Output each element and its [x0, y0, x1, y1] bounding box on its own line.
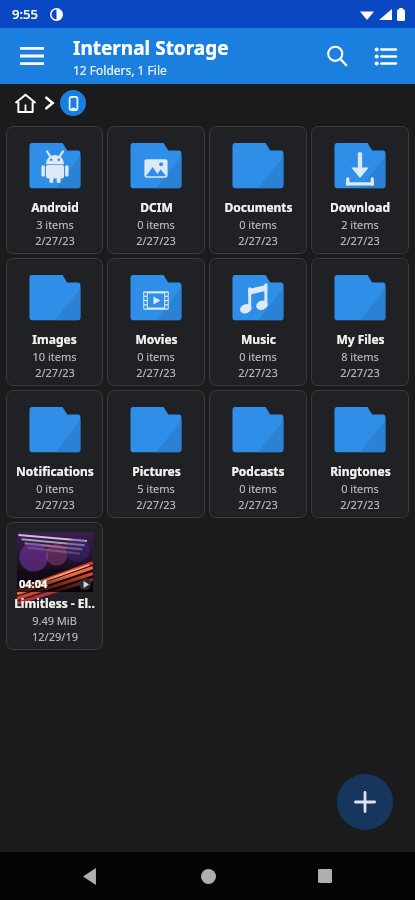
staticText: 2/27/23 [136, 365, 176, 380]
button[interactable]: Back [62, 852, 118, 900]
staticText: 0 items [137, 217, 175, 232]
button[interactable]: View as list [361, 32, 409, 80]
staticText: 0 items [239, 217, 277, 232]
staticText: 2/27/23 [35, 233, 75, 248]
button[interactable]: Ringtones [311, 390, 409, 518]
button[interactable]: Recent apps [297, 852, 353, 900]
staticText: 04:04 [19, 576, 48, 591]
button[interactable]: Music [209, 258, 307, 386]
staticText: 0 items [239, 349, 277, 364]
staticText: 12/29/19 [32, 629, 78, 644]
button[interactable]: My Files [311, 258, 409, 386]
staticText: Documents [224, 199, 293, 215]
button[interactable]: Documents [209, 126, 307, 254]
staticText: Movies [135, 331, 178, 347]
staticText: 3 items [36, 217, 74, 232]
button[interactable]: Images [6, 258, 103, 386]
staticText: Podcasts [231, 463, 285, 479]
staticText: Images [32, 331, 77, 347]
staticText: 5 items [137, 481, 175, 496]
staticText: 2/27/23 [238, 233, 278, 248]
button[interactable]: 04:04 [6, 522, 103, 650]
staticText: Notifications [16, 463, 94, 479]
button[interactable]: Internal storage [60, 90, 86, 116]
staticText: 2 items [341, 217, 379, 232]
staticText: 8 items [341, 349, 379, 364]
staticText: Android [31, 199, 79, 215]
staticText: DCIM [140, 199, 173, 215]
staticText: Download [330, 199, 390, 215]
button[interactable]: Search [313, 32, 361, 80]
staticText: Ringtones [330, 463, 391, 479]
staticText: Music [241, 331, 276, 347]
staticText: Limitless - El.. [14, 595, 95, 611]
button[interactable]: Android [6, 126, 103, 254]
staticText: My Files [336, 331, 385, 347]
staticText: Internal Storage [73, 35, 229, 61]
staticText: 12 Folders, 1 File [73, 62, 167, 78]
button[interactable]: Home [180, 852, 236, 900]
staticText: 2/27/23 [340, 233, 380, 248]
button[interactable]: DCIM [107, 126, 205, 254]
button[interactable]: Pictures [107, 390, 205, 518]
staticText: 0 items [36, 481, 74, 496]
staticText: 9:55 [12, 5, 38, 23]
button[interactable]: Notifications [6, 390, 103, 518]
staticText: 2/27/23 [340, 365, 380, 380]
button[interactable]: Podcasts [209, 390, 307, 518]
staticText: 2/27/23 [340, 497, 380, 512]
staticText: 2/27/23 [35, 365, 75, 380]
staticText: 0 items [239, 481, 277, 496]
button[interactable]: Download [311, 126, 409, 254]
button[interactable]: Add [337, 774, 393, 830]
staticText: 2/27/23 [238, 497, 278, 512]
staticText: 2/27/23 [136, 233, 176, 248]
staticText: 2/27/23 [238, 365, 278, 380]
staticText: 2/27/23 [35, 497, 75, 512]
staticText: 0 items [341, 481, 379, 496]
staticText: 9.49 MiB [32, 613, 77, 628]
button[interactable]: Movies [107, 258, 205, 386]
button[interactable]: Home [10, 88, 40, 118]
staticText: 10 items [32, 349, 77, 364]
staticText: 0 items [137, 349, 175, 364]
staticText: Pictures [132, 463, 181, 479]
staticText: 2/27/23 [136, 497, 176, 512]
button[interactable]: Menu [8, 32, 56, 80]
